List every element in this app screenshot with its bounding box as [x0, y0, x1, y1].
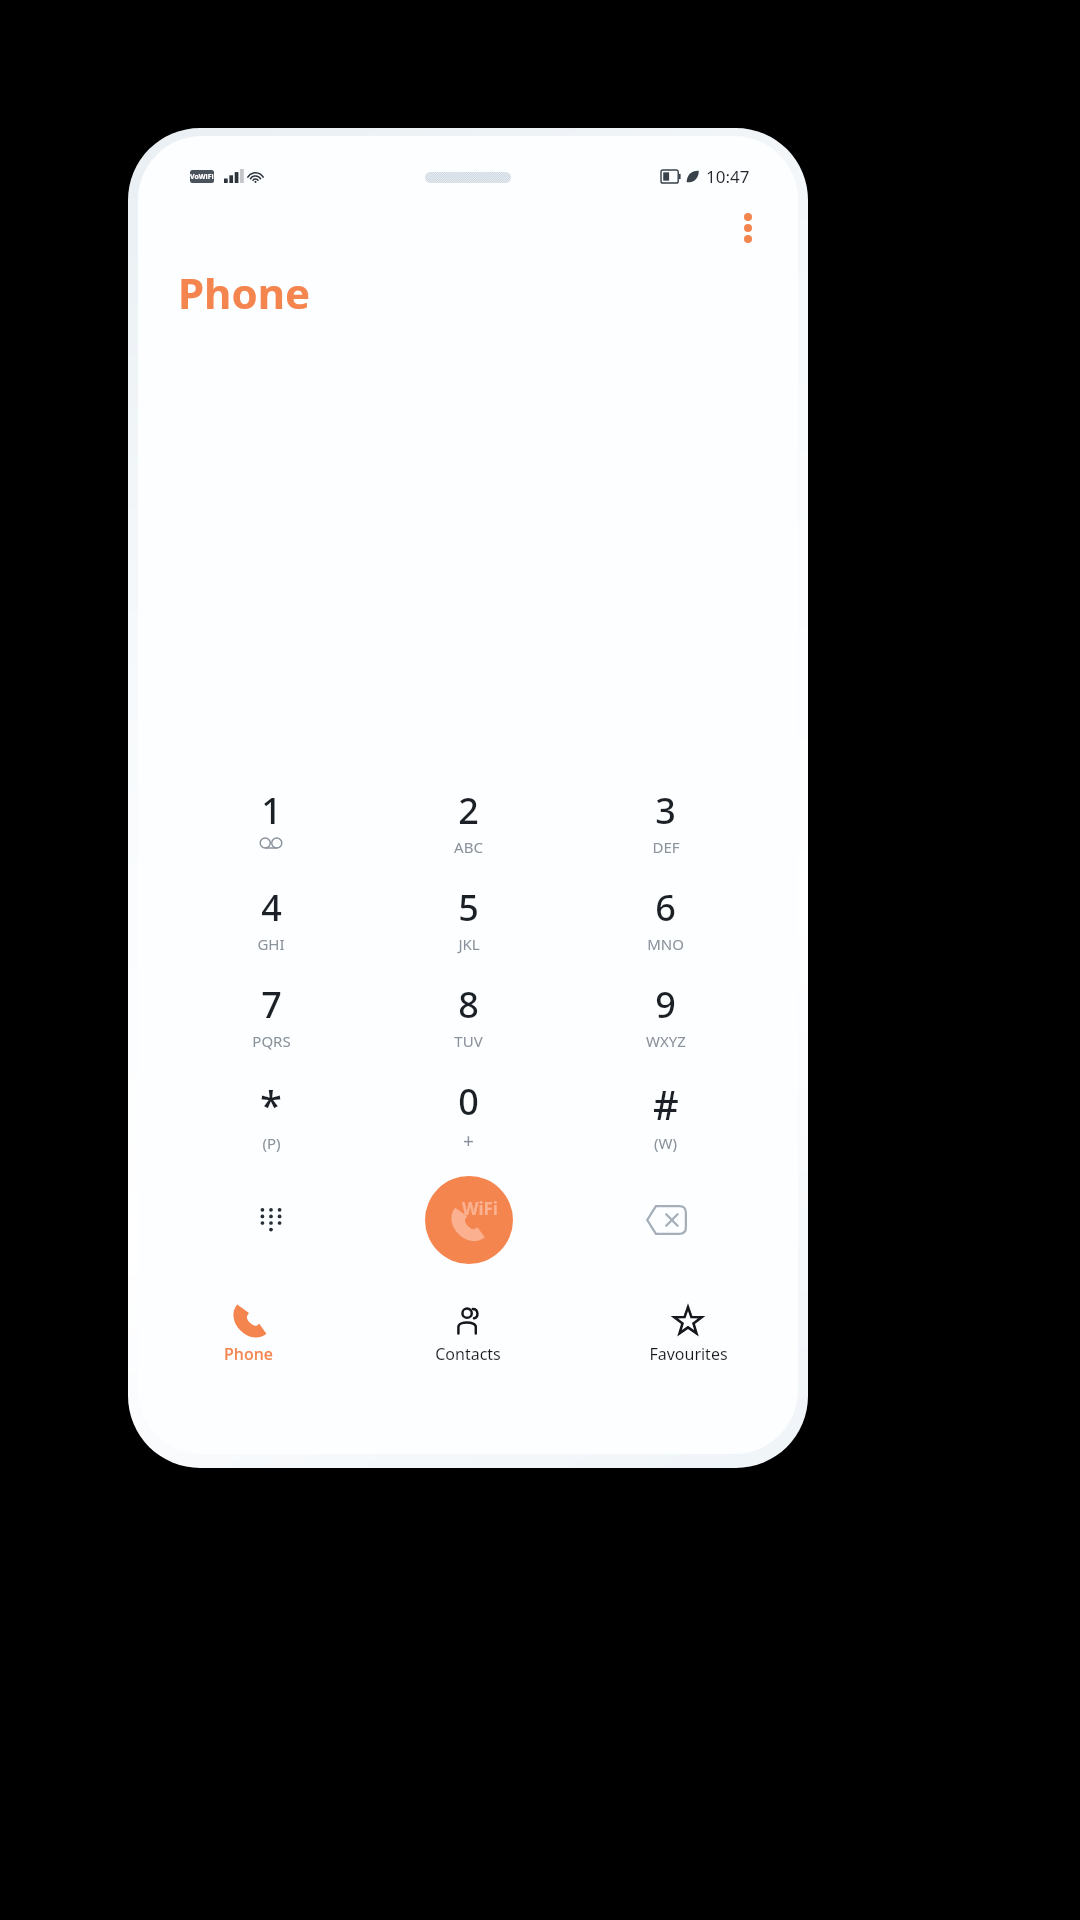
staticText: 1 [261, 786, 282, 835]
staticText: PQRS [252, 1031, 291, 1051]
staticText: Phone [178, 264, 311, 321]
staticText: GHI [257, 934, 285, 954]
staticText: WiFi [462, 1197, 498, 1220]
staticText: 7 [261, 980, 282, 1029]
button[interactable]: More options [724, 204, 772, 252]
button[interactable]: Call over WiFi [425, 1176, 513, 1264]
button[interactable]: Backspace [567, 1174, 764, 1266]
button[interactable]: 2 [370, 786, 567, 861]
staticText: 10:47 [706, 165, 750, 188]
staticText: 5 [458, 883, 479, 932]
button[interactable]: Keypad [172, 1174, 370, 1266]
button[interactable]: 3 [567, 786, 764, 861]
button[interactable]: 6 [567, 883, 764, 958]
staticText: Favourites [649, 1343, 728, 1365]
button[interactable]: 7 [172, 980, 370, 1055]
staticText: 3 [655, 786, 676, 835]
staticText: Contacts [435, 1343, 501, 1365]
staticText: 8 [458, 980, 479, 1029]
staticText: DEF [652, 837, 680, 857]
staticText: 0 [458, 1077, 479, 1126]
button[interactable]: Contacts [358, 1300, 578, 1420]
staticText: JKL [458, 934, 480, 954]
button[interactable]: Phone [138, 1300, 358, 1420]
button[interactable]: 8 [370, 980, 567, 1055]
button[interactable]: 0 [370, 1077, 567, 1152]
button[interactable]: 4 [172, 883, 370, 958]
staticText: * [260, 1077, 282, 1131]
staticText: 9 [655, 980, 676, 1029]
staticText: TUV [454, 1031, 483, 1051]
staticText: # [653, 1077, 679, 1131]
staticText: (P) [262, 1133, 281, 1152]
button[interactable]: 5 [370, 883, 567, 958]
staticText: 2 [458, 786, 479, 835]
staticText: 4 [261, 883, 282, 932]
staticText: (W) [654, 1133, 677, 1152]
staticText: Phone [224, 1343, 273, 1365]
button[interactable]: * [172, 1077, 370, 1152]
button[interactable]: # [567, 1077, 764, 1152]
staticText: WXYZ [646, 1031, 686, 1051]
staticText: ABC [454, 837, 483, 857]
staticText: VoWiFi [190, 172, 214, 182]
button[interactable]: 9 [567, 980, 764, 1055]
staticText: + [463, 1128, 474, 1152]
staticText: MNO [647, 934, 684, 954]
button[interactable]: 1 [172, 786, 370, 861]
button[interactable]: Favourites [578, 1300, 798, 1420]
staticText: 6 [655, 883, 676, 932]
